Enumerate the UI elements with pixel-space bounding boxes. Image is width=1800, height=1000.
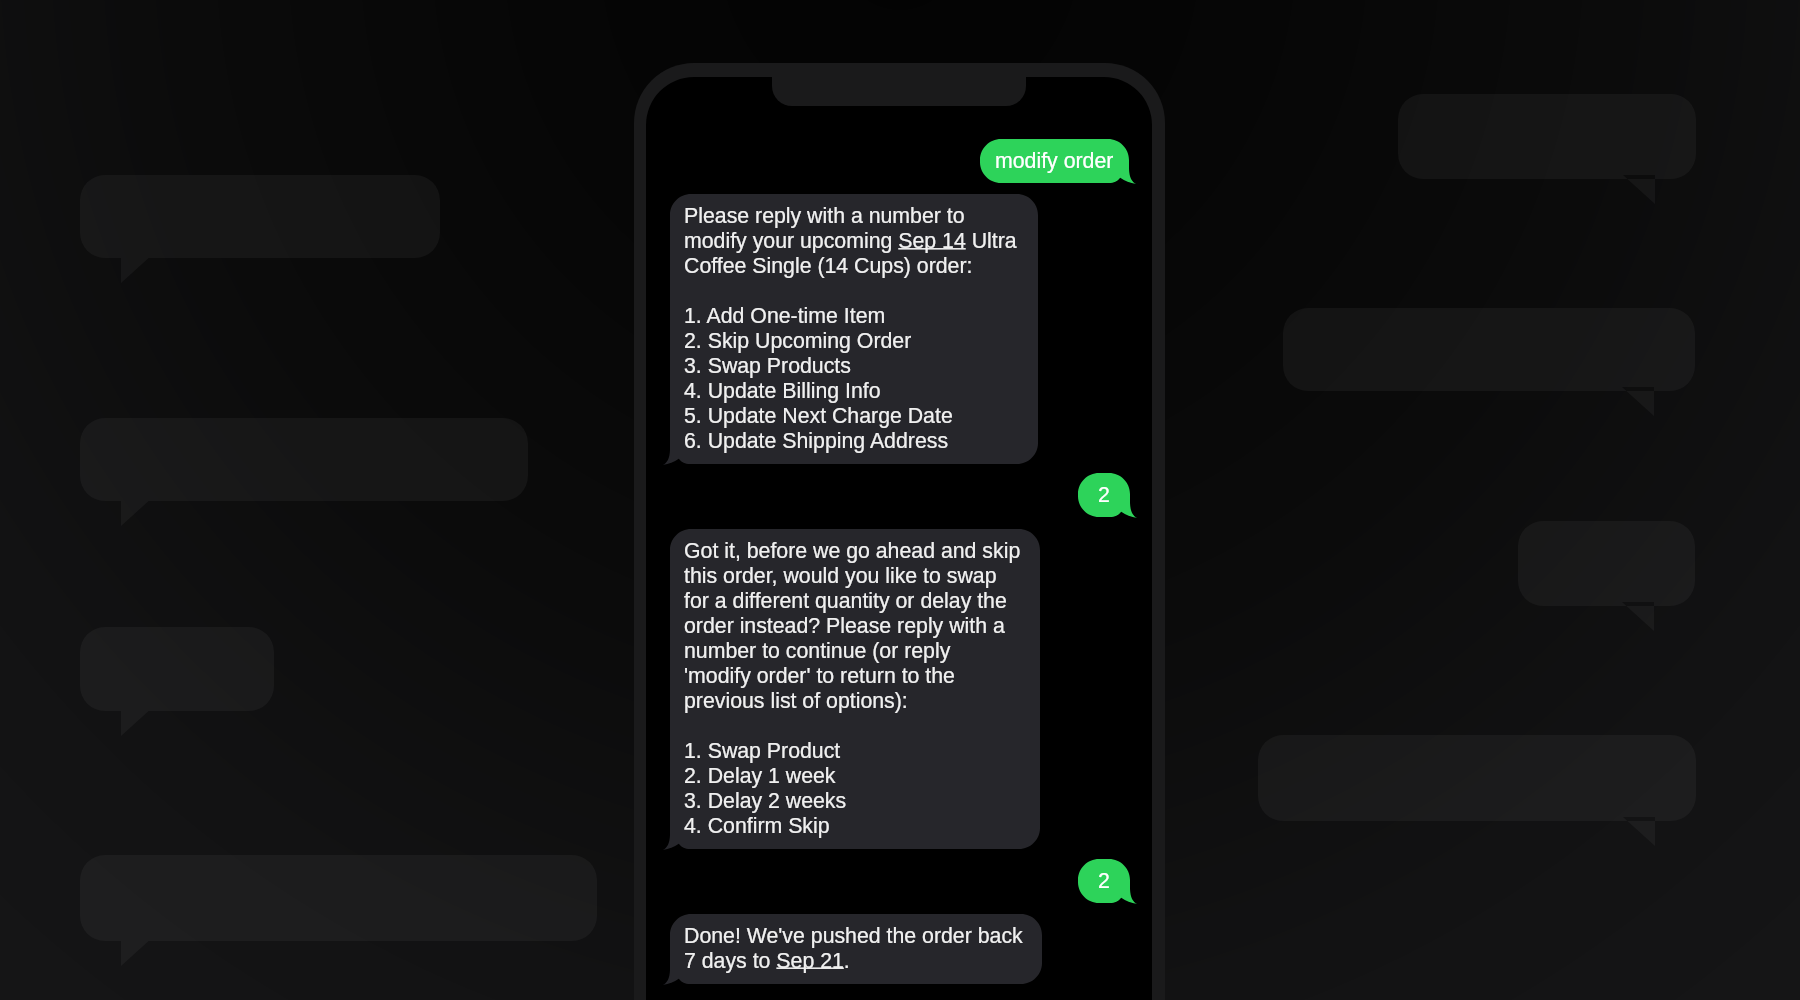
other: Phone showing an SMS conversation — [634, 63, 1165, 1000]
button[interactable]: modify order — [980, 139, 1129, 183]
staticText: Please reply with a number to modify you… — [684, 204, 1017, 452]
staticText: modify order — [995, 149, 1114, 173]
staticText: 2 — [1098, 869, 1110, 893]
button[interactable]: Please reply with a number to modify you… — [670, 194, 1038, 464]
button[interactable]: Got it, before we go ahead and skip this… — [670, 529, 1040, 849]
button[interactable]: Done! We've pushed the order back 7 days… — [670, 914, 1042, 984]
staticText: Done! We've pushed the order back 7 days… — [684, 924, 1023, 972]
staticText: 2 — [1098, 483, 1110, 507]
button[interactable]: 2 — [1078, 859, 1130, 903]
staticText: Got it, before we go ahead and skip this… — [684, 539, 1021, 837]
button[interactable]: 2 — [1078, 473, 1130, 517]
